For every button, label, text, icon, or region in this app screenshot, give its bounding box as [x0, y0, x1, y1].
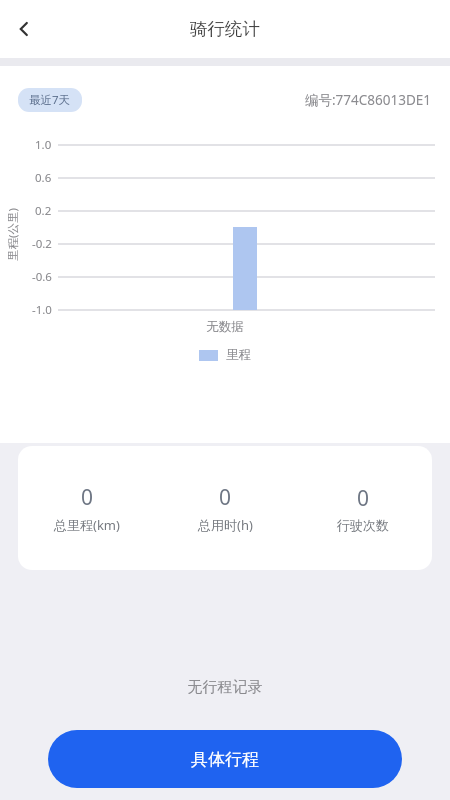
staticText: 无数据 [0, 319, 450, 335]
staticText: 0 [219, 483, 232, 512]
staticText: 0.2 [35, 203, 52, 219]
staticText: -0.6 [32, 269, 52, 285]
staticText: 0 [81, 483, 94, 512]
staticText: 编号:774C86013DE1 [305, 91, 432, 109]
button[interactable]: Back [0, 5, 48, 53]
button[interactable]: 具体行程 [48, 730, 402, 788]
staticText: 里程(公里) [5, 208, 21, 261]
staticText: 0 [357, 484, 370, 513]
staticText: 具体行程 [191, 749, 259, 770]
staticText: -0.2 [32, 236, 52, 252]
button[interactable]: 最近7天 [18, 88, 82, 112]
staticText: 总用时(h) [198, 516, 253, 534]
staticText: 1.0 [35, 137, 52, 153]
staticText: -1.0 [32, 302, 52, 318]
staticText: 最近7天 [29, 92, 71, 108]
staticText: 0.6 [35, 170, 52, 186]
staticText: 行驶次数 [337, 517, 389, 533]
staticText: 总里程(km) [54, 516, 120, 534]
staticText: 无行程记录 [0, 678, 450, 697]
staticText: 里程 [226, 347, 251, 363]
button[interactable]: 0 [18, 446, 432, 570]
staticText: 骑行统计 [190, 18, 260, 40]
